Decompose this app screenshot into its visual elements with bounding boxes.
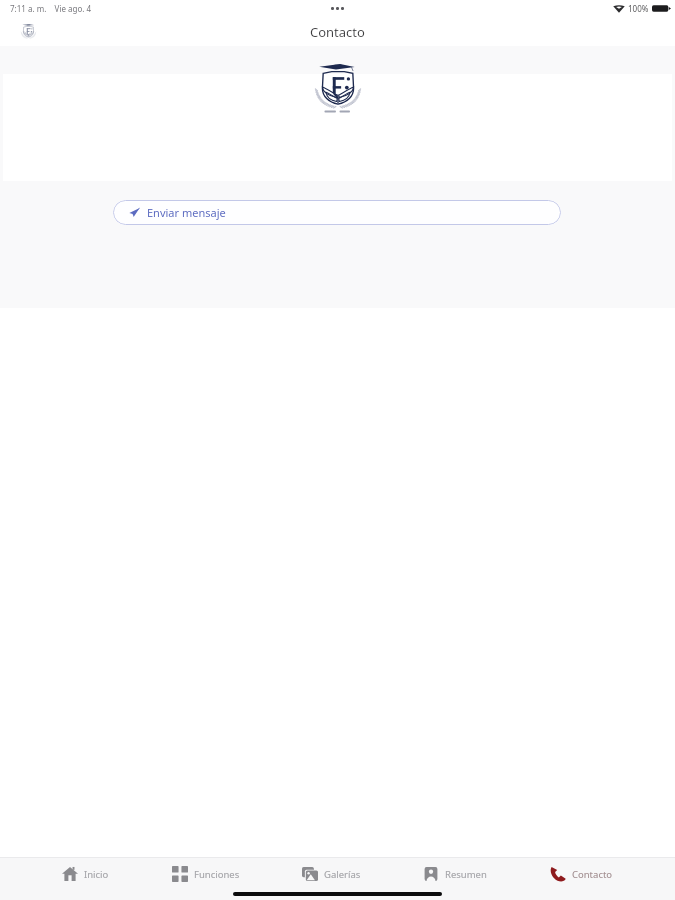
button[interactable]: Inicio — [62, 857, 109, 891]
button[interactable]: Galerías — [302, 857, 361, 891]
staticText: Funciones — [194, 868, 240, 881]
staticText: Inicio — [84, 868, 109, 881]
staticText: Contacto — [572, 868, 613, 881]
button[interactable]: Resumen — [423, 857, 487, 891]
button[interactable]: Enviar mensaje — [113, 200, 561, 225]
staticText: Contacto — [310, 23, 365, 41]
staticText: Enviar mensaje — [147, 205, 226, 220]
button[interactable]: Contacto — [550, 857, 613, 891]
staticText: 100% — [628, 3, 649, 14]
button[interactable]: Funciones — [172, 857, 240, 891]
staticText: 7:11 a. m. Vie ago. 4 — [10, 3, 92, 14]
button[interactable]: Logo de la institucion — [20, 22, 37, 41]
staticText: Galerías — [324, 868, 361, 881]
staticText: Resumen — [445, 868, 487, 881]
